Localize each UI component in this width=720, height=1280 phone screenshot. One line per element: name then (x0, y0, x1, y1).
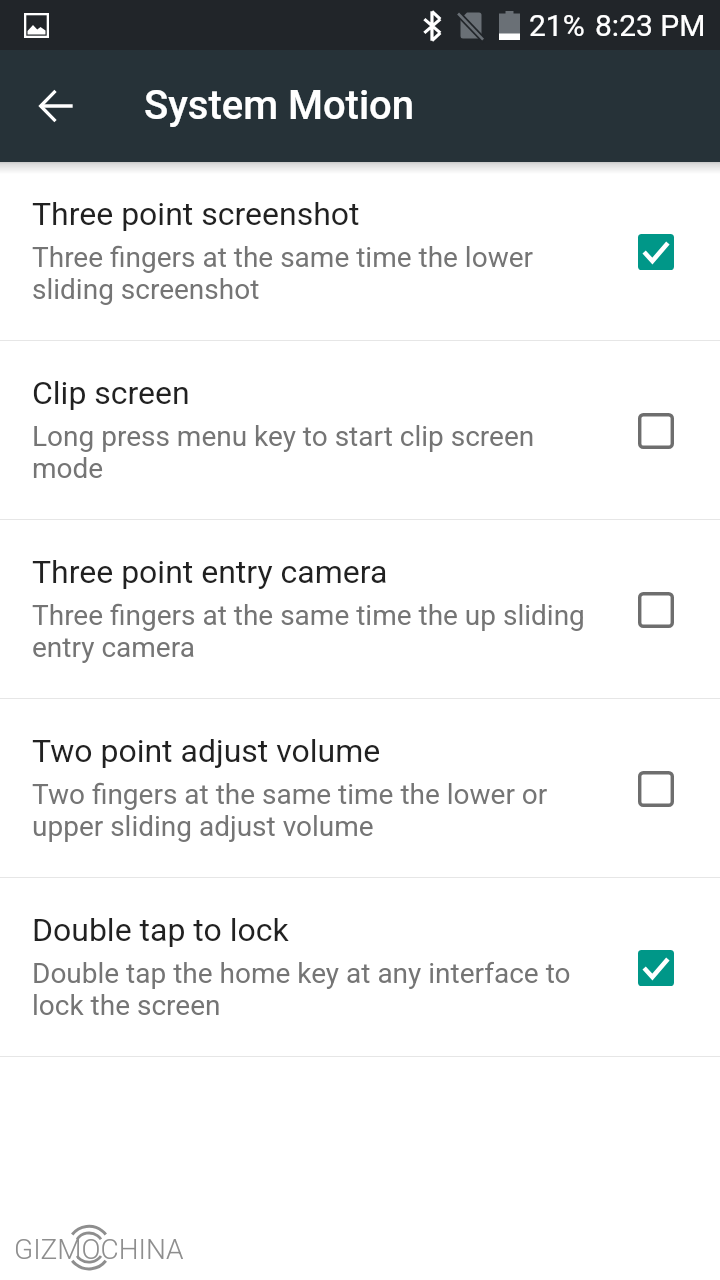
other: Screenshot (24, 13, 49, 38)
staticText: Double tap to lock (32, 912, 289, 948)
staticText: Clip screen (32, 375, 190, 411)
staticText: Three point entry camera (32, 554, 388, 590)
button[interactable]: Three point screenshot (0, 162, 720, 341)
staticText: GIZMOCHINA (14, 1233, 184, 1266)
button[interactable]: Two point adjust volume (0, 699, 720, 878)
staticText: Long press menu key to start clip screen… (32, 421, 600, 485)
staticText: System Motion (144, 82, 415, 129)
button[interactable]: Clip screen, not checked (624, 399, 688, 463)
staticText: 21% (529, 8, 585, 43)
staticText: Double tap the home key at any interface… (32, 958, 600, 1022)
button[interactable]: Clip screen (0, 341, 720, 520)
button[interactable]: Double tap to lock (0, 878, 720, 1057)
staticText: Three fingers at the same time the lower… (32, 242, 600, 306)
staticText: Two point adjust volume (32, 733, 381, 769)
button[interactable]: Three point entry camera (0, 520, 720, 699)
button[interactable]: Double tap to lock, checked (624, 936, 688, 1000)
staticText: Three point screenshot (32, 196, 360, 232)
button[interactable]: Three point entry camera, not checked (624, 578, 688, 642)
button[interactable]: Three point screenshot, checked (624, 220, 688, 284)
button[interactable]: Two point adjust volume, not checked (624, 757, 688, 821)
staticText: 8:23 PM (595, 8, 706, 43)
staticText: Three fingers at the same time the up sl… (32, 600, 600, 664)
staticText: Two fingers at the same time the lower o… (32, 779, 600, 843)
button[interactable]: Back (24, 74, 88, 138)
